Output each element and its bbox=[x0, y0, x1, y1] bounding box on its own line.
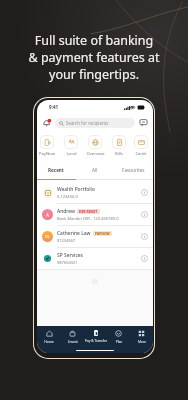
staticText: Full suite of banking & payment features… bbox=[28, 32, 160, 83]
staticText: More bbox=[127, 339, 153, 343]
button[interactable]: All bbox=[75, 161, 114, 179]
staticText: PayNow bbox=[39, 151, 55, 157]
staticText: 9:41 bbox=[49, 104, 59, 110]
staticText: Catherine Law bbox=[57, 230, 91, 237]
button[interactable]: Invest bbox=[61, 330, 84, 343]
staticText: Invest bbox=[58, 339, 88, 343]
button[interactable]: Pay & Transfer bbox=[84, 330, 107, 342]
staticText: 987654321 bbox=[57, 260, 78, 265]
staticText: Bills bbox=[115, 151, 123, 157]
staticText: DBS REMIT bbox=[79, 209, 98, 214]
staticText: A bbox=[46, 212, 49, 218]
staticText: 81234567 bbox=[57, 238, 76, 243]
button[interactable]: Bills bbox=[107, 131, 131, 157]
staticText: PAYNOW bbox=[95, 231, 110, 236]
staticText: Andrew bbox=[57, 208, 75, 215]
button[interactable]: Overseas bbox=[83, 131, 107, 157]
button[interactable]: Messages bbox=[139, 118, 148, 127]
staticText: Search for recipients bbox=[66, 120, 109, 126]
button[interactable]: Recent bbox=[37, 161, 75, 179]
button[interactable]: A bbox=[37, 204, 153, 225]
staticText: SP Services bbox=[57, 252, 83, 259]
button[interactable]: Info bbox=[141, 255, 148, 262]
button[interactable]: Favourites bbox=[114, 161, 153, 179]
button[interactable]: Search for recipients bbox=[55, 118, 135, 128]
button[interactable]: Local bbox=[59, 131, 83, 157]
staticText: Plan bbox=[104, 339, 134, 343]
button[interactable]: CL bbox=[37, 226, 153, 247]
staticText: S-123456-0 bbox=[57, 194, 78, 199]
staticText: Cards bbox=[135, 151, 147, 157]
button[interactable]: Plan bbox=[107, 330, 130, 343]
button[interactable]: Wealth Portfolio bbox=[37, 182, 153, 203]
button[interactable]: Info bbox=[141, 211, 148, 218]
staticText: Local bbox=[66, 151, 77, 157]
staticText: CL bbox=[45, 234, 50, 239]
button[interactable]: SP Services bbox=[37, 248, 153, 269]
staticText: Recent bbox=[48, 167, 64, 173]
button[interactable]: PayNow bbox=[37, 131, 59, 157]
staticText: All bbox=[92, 167, 98, 173]
button[interactable]: Info bbox=[141, 189, 148, 196]
staticText: Pay & Transfer bbox=[81, 338, 111, 342]
button[interactable]: Cards bbox=[131, 131, 151, 157]
button[interactable]: More bbox=[130, 330, 153, 343]
staticText: Home bbox=[37, 339, 64, 343]
button[interactable]: Notifications bbox=[42, 118, 52, 128]
button[interactable]: Info bbox=[141, 233, 148, 240]
staticText: Favourites bbox=[122, 167, 145, 173]
button[interactable]: Home bbox=[37, 330, 61, 343]
staticText: Bank Mandiri IDR - 123-456789-0 bbox=[57, 216, 119, 221]
staticText: Overseas bbox=[86, 151, 105, 157]
staticText: Wealth Portfolio bbox=[57, 186, 95, 193]
